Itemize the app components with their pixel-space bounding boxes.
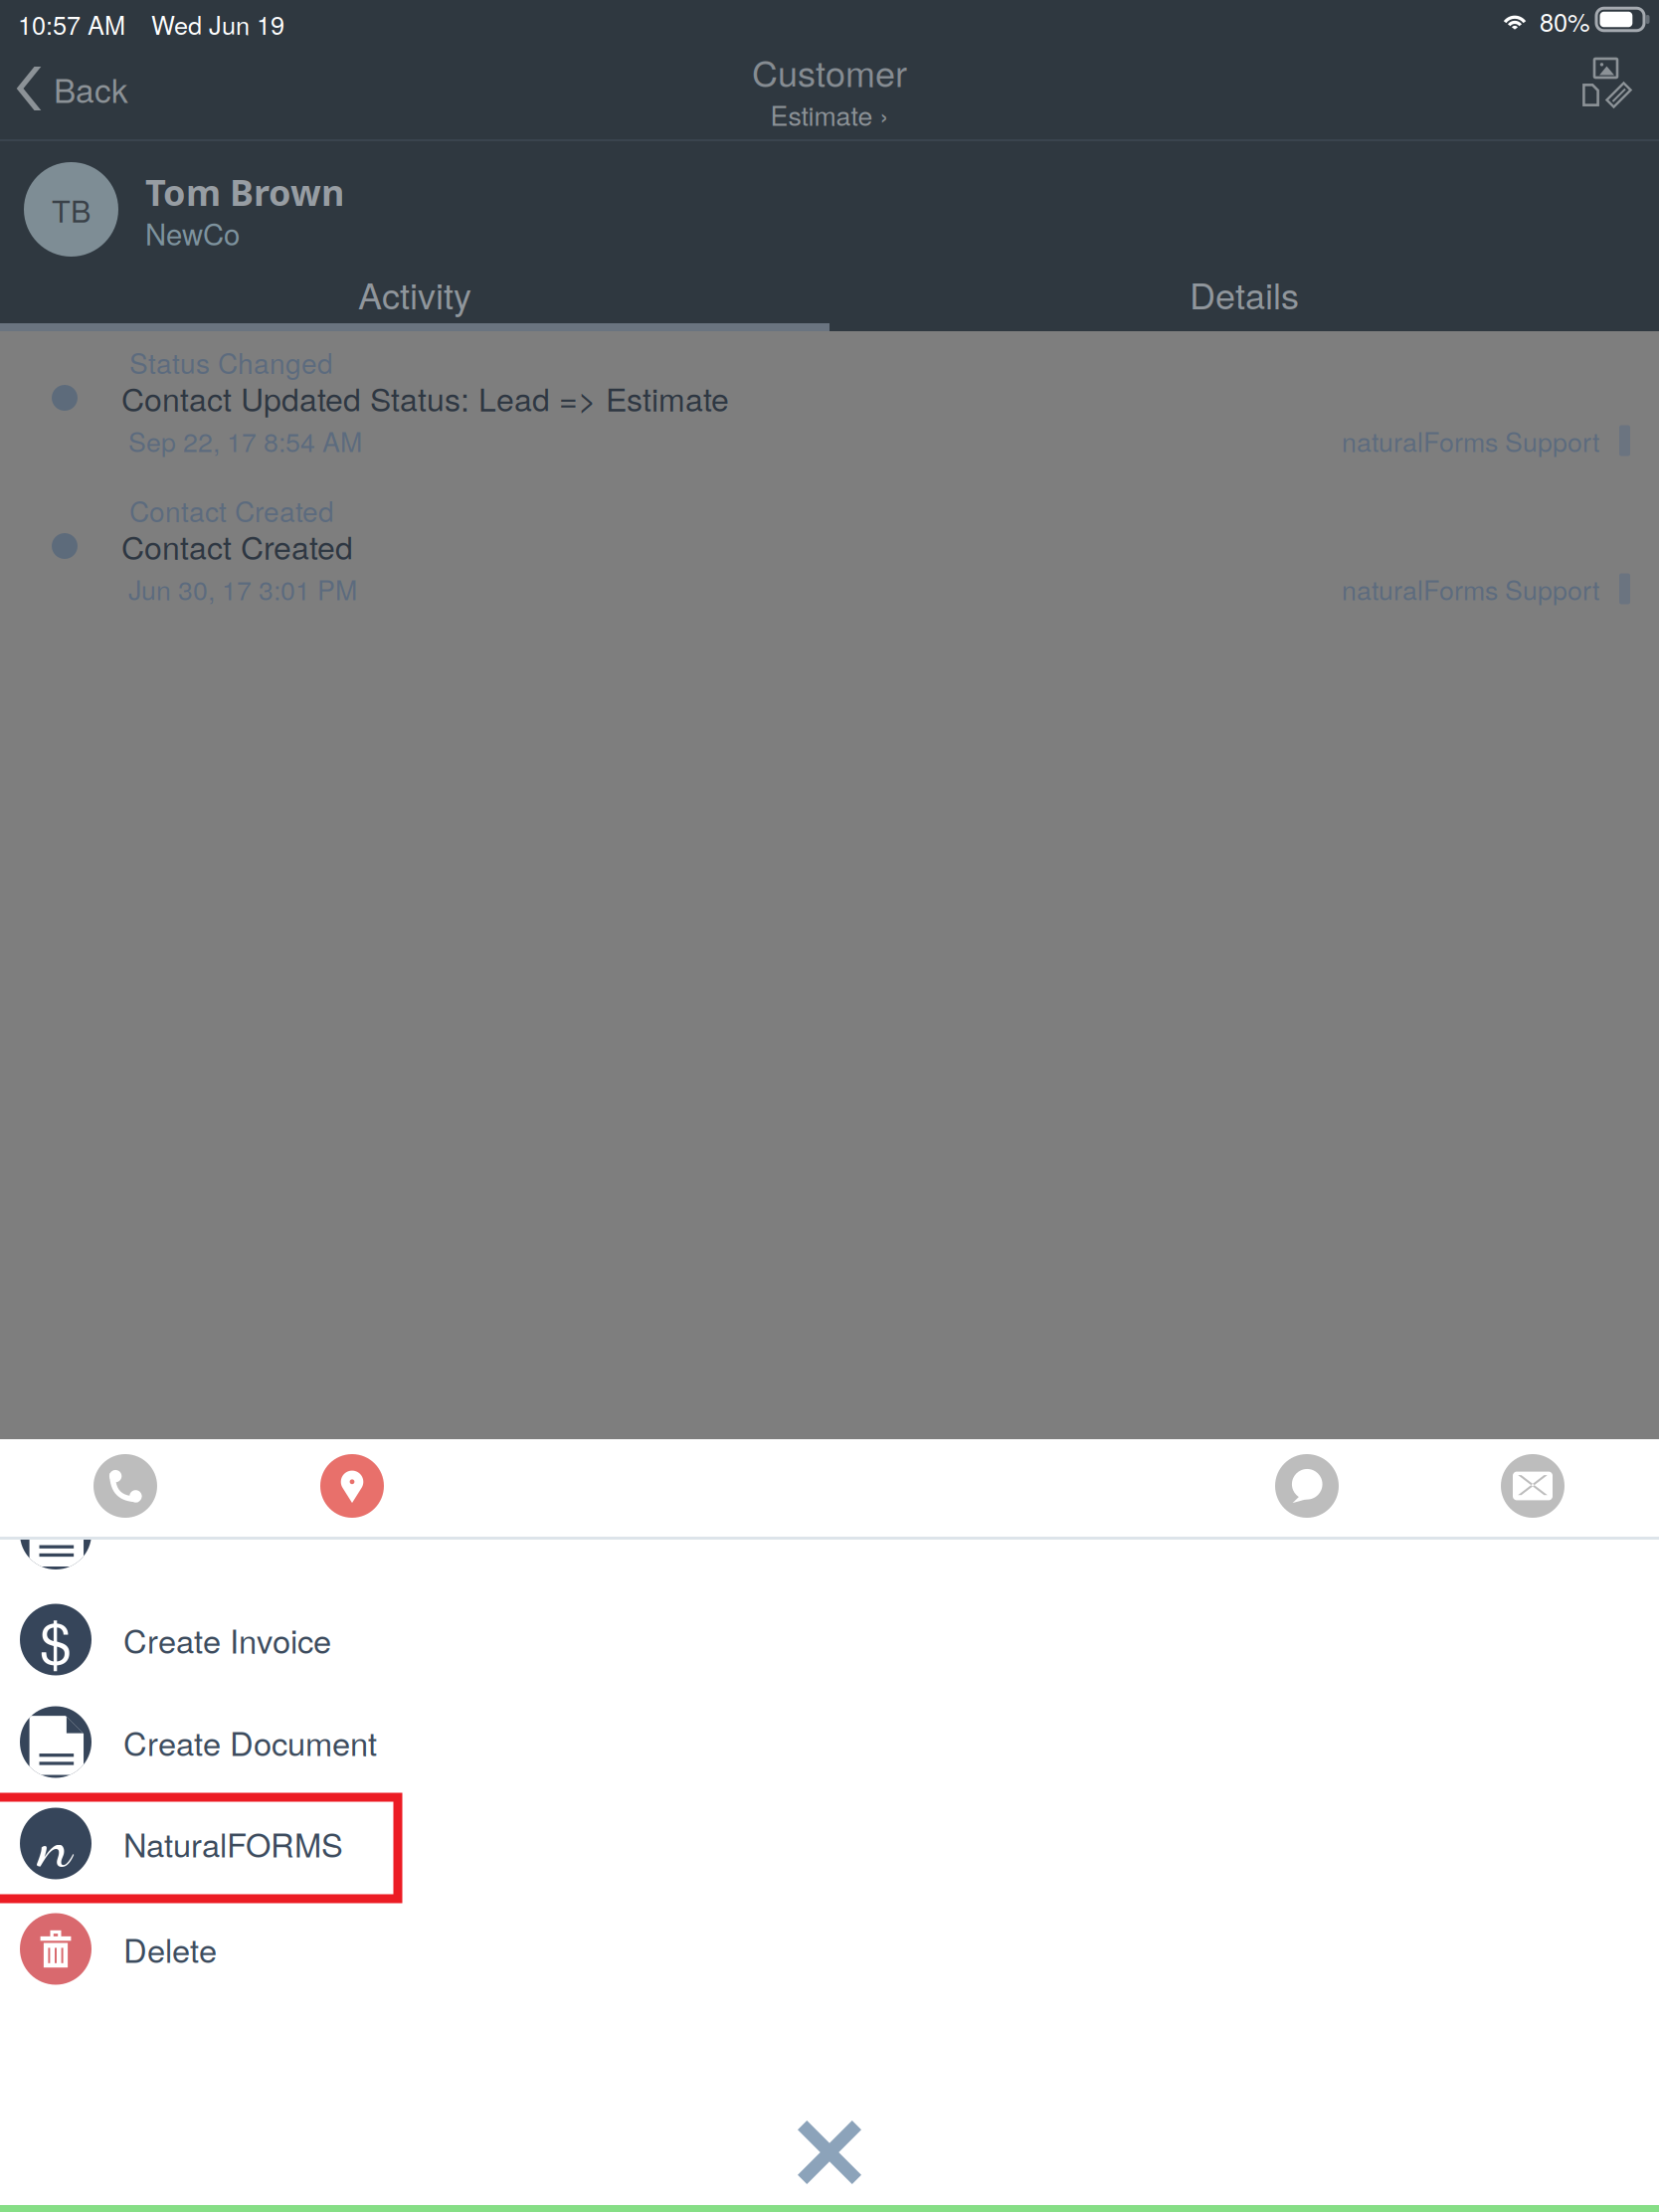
- staticText: NewCo: [145, 212, 240, 254]
- staticText: 80%: [1540, 3, 1590, 39]
- staticText: NaturalFORMS: [123, 1820, 343, 1867]
- staticText: 10:57 AM: [18, 6, 125, 42]
- staticText: Customer: [752, 46, 907, 97]
- staticText: Jun 30, 17 3:01 PM: [128, 570, 357, 608]
- staticText: Contact Updated Status: Lead => Estimate: [121, 375, 729, 421]
- button[interactable]: Delete: [0, 1898, 1659, 2000]
- staticText: Create Invoice: [123, 1616, 331, 1663]
- button[interactable]: Attach photo or document: [1574, 52, 1646, 119]
- staticText: $: [40, 1599, 72, 1680]
- staticText: Details: [1190, 268, 1299, 320]
- staticText: Create Document: [123, 1719, 377, 1765]
- staticText: Contact Created: [129, 490, 334, 530]
- button[interactable]: Activity: [0, 265, 829, 331]
- staticText: Delete: [123, 1926, 217, 1972]
- button[interactable]: Back: [0, 56, 199, 121]
- staticText: Sep 22, 17 8:54 AM: [128, 422, 362, 460]
- staticText: n: [39, 1802, 72, 1885]
- staticText: Status Changed: [129, 342, 333, 382]
- staticText: Activity: [358, 268, 471, 320]
- button[interactable]: Customer: [631, 48, 1028, 139]
- staticText: naturalForms Support: [1342, 570, 1599, 608]
- button[interactable]: Map: [320, 1454, 384, 1518]
- button[interactable]: Create Document: [0, 1691, 1659, 1793]
- staticText: Tom Brown: [145, 168, 344, 216]
- staticText: Contact Created: [121, 523, 353, 569]
- staticText: TB: [52, 187, 91, 231]
- staticText: Estimate ›: [770, 95, 889, 133]
- button[interactable]: n: [0, 1792, 1659, 1895]
- button[interactable]: $: [0, 1588, 1659, 1691]
- button[interactable]: Call: [93, 1454, 157, 1518]
- button[interactable]: Details: [829, 265, 1659, 331]
- button[interactable]: Message: [1275, 1454, 1339, 1518]
- button[interactable]: Email: [1501, 1454, 1565, 1518]
- staticText: Wed Jun 19: [151, 6, 284, 42]
- button[interactable]: Close: [730, 2081, 929, 2212]
- staticText: naturalForms Support: [1342, 422, 1599, 460]
- staticText: Back: [54, 65, 128, 112]
